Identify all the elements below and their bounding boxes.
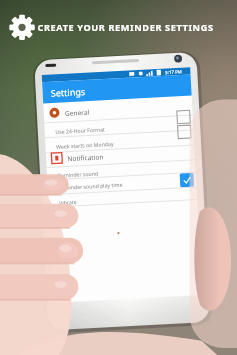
button[interactable]: Create your reminder settings	[37, 17, 229, 37]
button[interactable]: Settings gear	[11, 16, 33, 38]
